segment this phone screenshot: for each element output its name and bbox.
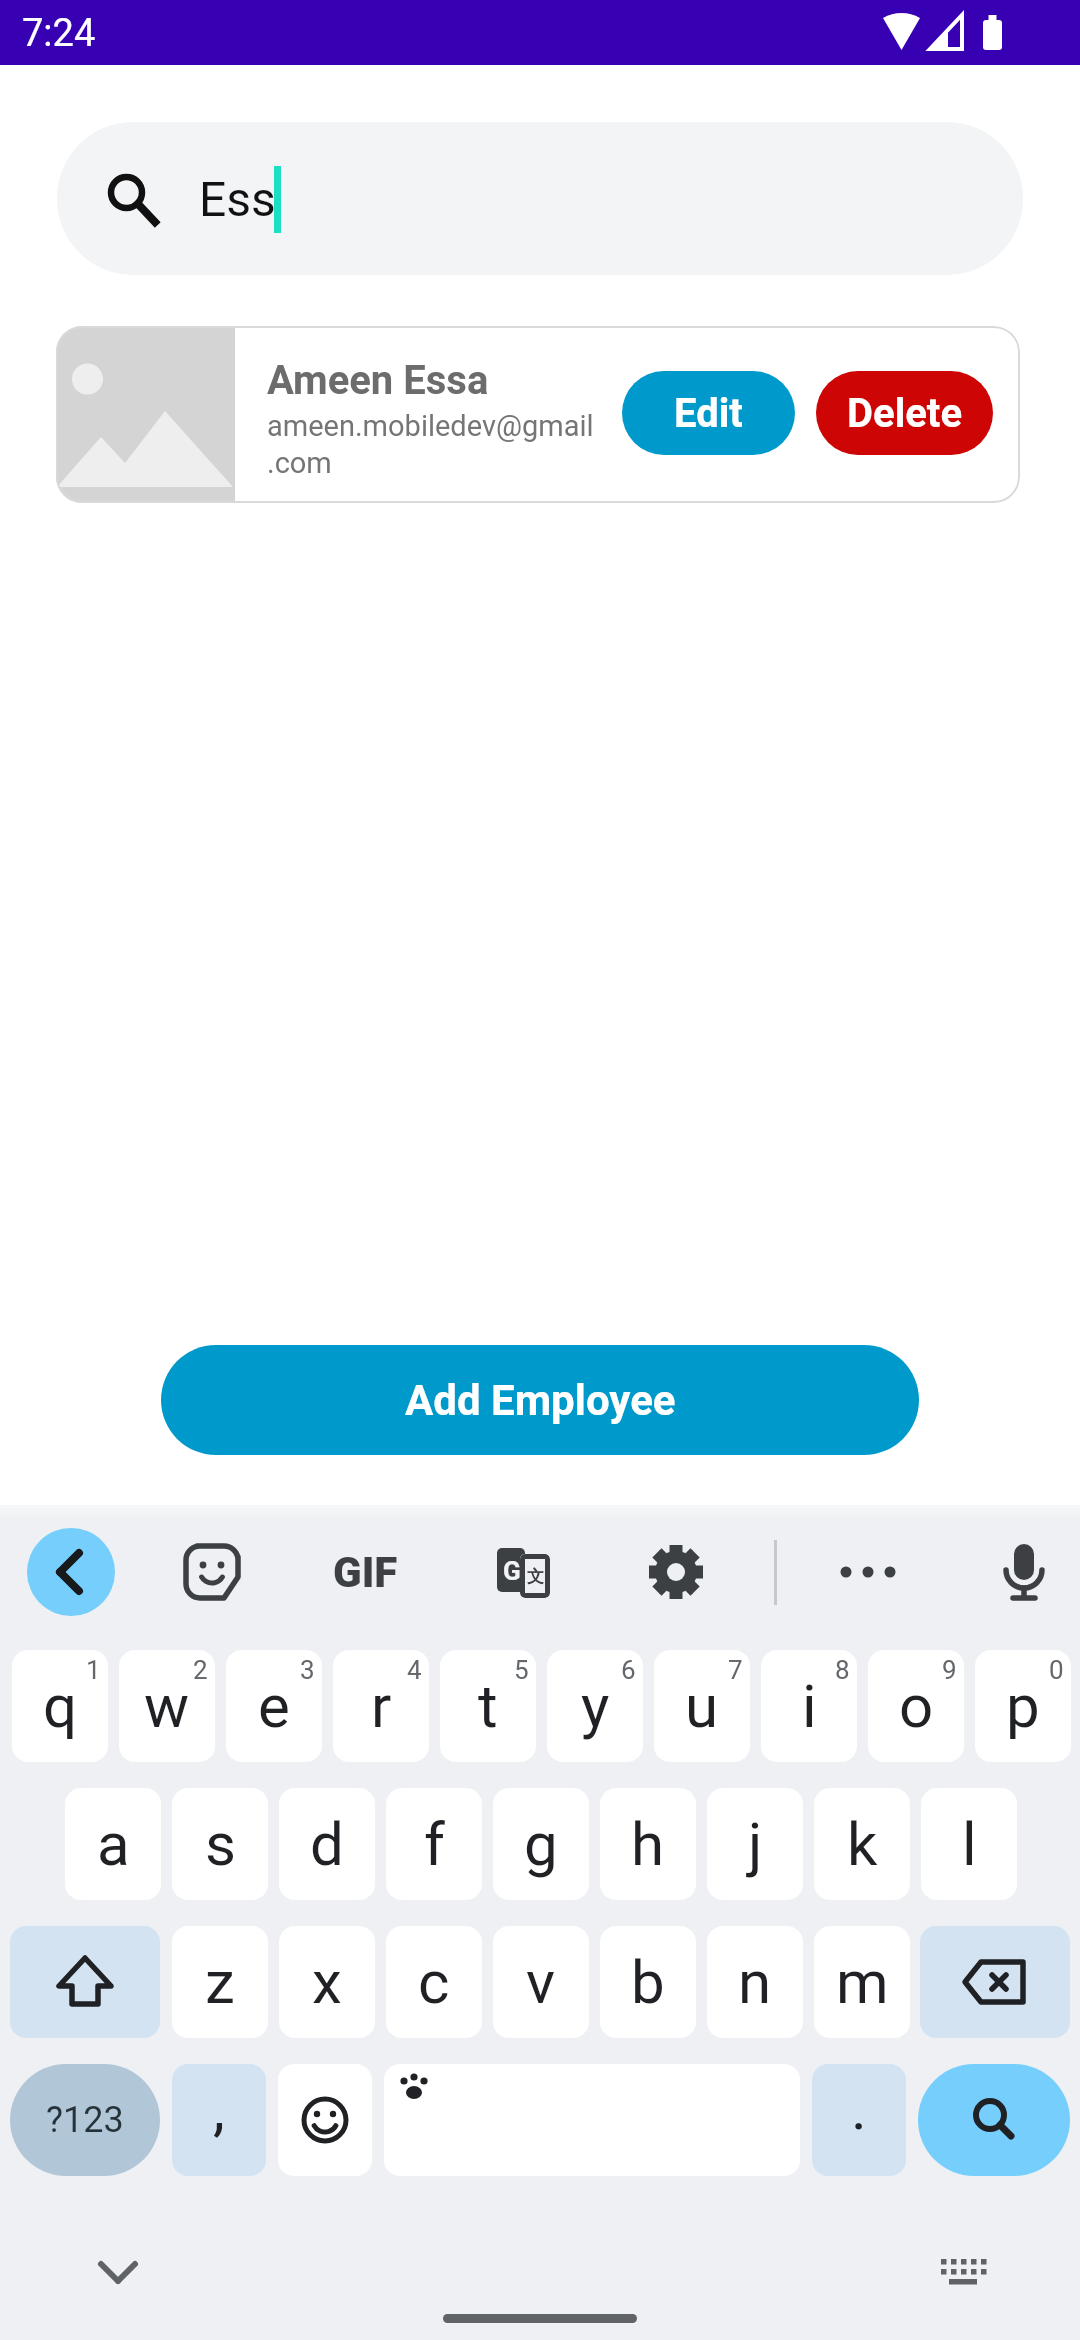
staticText: 2 xyxy=(193,1655,208,1685)
staticText: 文 xyxy=(527,1566,544,1587)
button[interactable]: b xyxy=(600,1926,696,2038)
staticText: GIF xyxy=(333,1548,398,1597)
staticText: i xyxy=(802,1671,817,1741)
button[interactable]: h xyxy=(600,1788,696,1900)
staticText: j xyxy=(748,1809,763,1879)
button[interactable]: g xyxy=(493,1788,589,1900)
button[interactable]: w xyxy=(119,1650,215,1762)
staticText: k xyxy=(847,1809,878,1879)
staticText: h xyxy=(631,1809,665,1879)
button[interactable]: GIF xyxy=(310,1538,420,1606)
staticText: 6 xyxy=(621,1655,636,1685)
button[interactable]: y xyxy=(547,1650,643,1762)
staticText: f xyxy=(424,1809,445,1879)
staticText: n xyxy=(738,1947,772,2017)
button[interactable] xyxy=(384,2064,800,2176)
button[interactable]: f xyxy=(386,1788,482,1900)
button[interactable] xyxy=(90,2248,146,2292)
staticText: Add Employee xyxy=(405,1376,676,1425)
button[interactable] xyxy=(27,1528,115,1616)
staticText: Ameen Essa xyxy=(267,357,489,404)
staticText: Delete xyxy=(847,390,962,437)
button[interactable]: Ess xyxy=(57,122,1023,275)
staticText: u xyxy=(685,1671,719,1741)
staticText: s xyxy=(205,1809,236,1879)
staticText: 0 xyxy=(1049,1655,1064,1685)
button[interactable]: , xyxy=(172,2064,266,2176)
button[interactable] xyxy=(183,1543,241,1601)
button[interactable]: r xyxy=(333,1650,429,1762)
button[interactable]: u xyxy=(654,1650,750,1762)
button[interactable]: j xyxy=(707,1788,803,1900)
button[interactable]: e xyxy=(226,1650,322,1762)
staticText: 9 xyxy=(942,1655,957,1685)
button[interactable]: l xyxy=(921,1788,1017,1900)
button[interactable]: s xyxy=(172,1788,268,1900)
staticText: c xyxy=(418,1947,450,2017)
staticText: v xyxy=(526,1947,556,2017)
button[interactable]: Ameen Essa xyxy=(56,326,1020,503)
button[interactable] xyxy=(990,1538,1058,1606)
button[interactable]: o xyxy=(868,1650,964,1762)
staticText: q xyxy=(43,1671,78,1741)
staticText: Ess xyxy=(199,171,276,227)
staticText: y xyxy=(581,1671,610,1741)
button[interactable]: p xyxy=(975,1650,1071,1762)
button[interactable]: t xyxy=(440,1650,536,1762)
button[interactable]: c xyxy=(386,1926,482,2038)
button[interactable]: z xyxy=(172,1926,268,2038)
staticText: 4 xyxy=(407,1655,422,1685)
staticText: G xyxy=(503,1556,521,1586)
button[interactable]: d xyxy=(279,1788,375,1900)
staticText: a xyxy=(97,1809,130,1879)
button[interactable]: Add Employee xyxy=(161,1345,919,1455)
staticText: r xyxy=(371,1671,392,1741)
button[interactable]: Edit xyxy=(622,371,795,455)
staticText: ameen.mobiledev@gmail .com xyxy=(267,409,594,480)
button[interactable] xyxy=(10,1926,160,2038)
button[interactable] xyxy=(930,2248,994,2292)
staticText: g xyxy=(524,1809,558,1879)
button[interactable]: x xyxy=(279,1926,375,2038)
staticText: d xyxy=(310,1809,344,1879)
staticText: e xyxy=(258,1671,290,1741)
staticText: Edit xyxy=(674,390,743,437)
button[interactable]: a xyxy=(65,1788,161,1900)
staticText: 3 xyxy=(300,1655,315,1685)
button[interactable]: v xyxy=(493,1926,589,2038)
staticText: t xyxy=(478,1671,498,1741)
staticText: . xyxy=(851,2073,867,2143)
button[interactable]: G xyxy=(497,1538,553,1606)
staticText: , xyxy=(213,2073,225,2143)
staticText: 5 xyxy=(514,1655,529,1685)
staticText: 8 xyxy=(835,1655,850,1685)
button[interactable] xyxy=(920,1926,1070,2038)
staticText: p xyxy=(1006,1671,1040,1741)
button[interactable]: k xyxy=(814,1788,910,1900)
button[interactable] xyxy=(834,1538,902,1606)
staticText: o xyxy=(899,1671,934,1741)
staticText: m xyxy=(836,1947,889,2017)
button[interactable] xyxy=(642,1538,710,1606)
staticText: b xyxy=(631,1947,665,2017)
button[interactable]: m xyxy=(814,1926,910,2038)
button[interactable]: Delete xyxy=(816,371,993,455)
staticText: 7:24 xyxy=(22,11,96,56)
staticText: l xyxy=(962,1809,977,1879)
button[interactable]: n xyxy=(707,1926,803,2038)
staticText: z xyxy=(205,1947,235,2017)
staticText: x xyxy=(312,1947,342,2017)
button[interactable] xyxy=(918,2064,1070,2176)
staticText: w xyxy=(144,1671,190,1741)
staticText: 7 xyxy=(728,1655,743,1685)
button[interactable]: . xyxy=(812,2064,906,2176)
button[interactable]: i xyxy=(761,1650,857,1762)
button[interactable]: ?123 xyxy=(10,2064,160,2176)
button[interactable]: q xyxy=(12,1650,108,1762)
staticText: 1 xyxy=(86,1655,101,1685)
button[interactable] xyxy=(278,2064,372,2176)
staticText: ?123 xyxy=(46,2099,124,2141)
